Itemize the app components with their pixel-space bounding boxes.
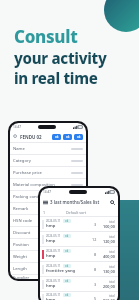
staticText: total xyxy=(109,235,115,239)
staticText: hmp xyxy=(46,253,56,259)
staticText: 14:47 xyxy=(43,190,52,194)
button[interactable]: Search xyxy=(10,131,86,142)
button[interactable]: 2024-05-11 xyxy=(40,292,118,300)
button[interactable]: HSN code xyxy=(10,215,86,227)
staticText: Material composition xyxy=(13,182,55,188)
staticText: ok xyxy=(65,234,69,238)
staticText: hmp xyxy=(46,283,56,289)
staticText: Default sort xyxy=(66,210,86,215)
staticText: ok xyxy=(66,135,70,139)
button[interactable]: 1 xyxy=(40,208,118,216)
staticText: total xyxy=(109,220,115,224)
button[interactable]: Menu xyxy=(40,196,118,208)
staticText: hmp xyxy=(46,238,56,244)
staticText: 14:47 xyxy=(13,125,22,129)
button[interactable]: Name xyxy=(10,143,86,155)
staticText: 1 xyxy=(43,210,46,215)
staticText: Weight xyxy=(13,254,27,260)
staticText: ok xyxy=(65,264,69,268)
staticText: total xyxy=(109,265,115,269)
staticText: Discount xyxy=(13,230,31,236)
staticText: Length xyxy=(13,266,27,272)
button[interactable]: ok xyxy=(52,134,61,140)
staticText: frontière yang xyxy=(46,268,76,274)
staticText: 2024-05-11 xyxy=(46,234,61,238)
staticText: ok xyxy=(65,293,69,297)
button[interactable]: Weight xyxy=(10,251,86,263)
staticText: Consult xyxy=(14,25,78,48)
staticText: 5 xyxy=(94,296,97,300)
staticText: 8 xyxy=(94,267,97,272)
other: Menu xyxy=(43,200,48,205)
staticText: 3 xyxy=(94,282,97,287)
staticText: total xyxy=(109,280,115,284)
staticText: hmp xyxy=(46,223,56,229)
staticText: ok xyxy=(55,135,59,139)
staticText: 3 xyxy=(94,222,97,227)
staticText: 2024-05-11 xyxy=(46,249,61,253)
staticText: 2024-05-11 xyxy=(46,264,61,268)
staticText: ok xyxy=(77,135,81,139)
button[interactable]: Material composition xyxy=(10,179,86,191)
staticText: Supplier xyxy=(13,275,30,279)
button[interactable]: 2024-05-11 xyxy=(40,277,118,292)
staticText: total xyxy=(109,250,115,254)
staticText: 100,00 xyxy=(103,224,115,229)
staticText: ok xyxy=(65,249,69,253)
button[interactable]: 2024-05-11 xyxy=(40,262,118,277)
staticText: your activity xyxy=(14,48,107,68)
staticText: Position xyxy=(13,242,29,248)
staticText: 130,00 xyxy=(103,269,115,274)
staticText: 2024-05-11 xyxy=(46,293,61,297)
staticText: Packing content xyxy=(13,194,45,200)
button[interactable]: Remark xyxy=(10,203,86,215)
staticText: in real time xyxy=(14,68,98,88)
button[interactable]: ok xyxy=(63,134,72,140)
button[interactable]: Discount xyxy=(10,227,86,239)
staticText: 8 xyxy=(94,252,97,257)
staticText: total xyxy=(109,294,115,298)
staticText: 12 xyxy=(92,237,97,242)
staticText: HSN code xyxy=(13,218,33,224)
button[interactable]: ok xyxy=(74,134,83,140)
button[interactable]: 2024-05-11 xyxy=(40,217,118,232)
button[interactable]: Supplier xyxy=(10,275,86,279)
staticText: ok xyxy=(65,279,69,283)
staticText: hmp xyxy=(46,297,56,300)
staticText: 2024-05-11 xyxy=(46,279,61,283)
button[interactable]: Category xyxy=(10,155,86,167)
other: Search xyxy=(110,200,115,205)
staticText: 400,00 xyxy=(103,254,115,259)
other: Search xyxy=(13,134,18,139)
staticText: 860,00 xyxy=(103,298,115,300)
staticText: ok xyxy=(65,219,69,223)
button[interactable]: Length xyxy=(10,263,86,275)
staticText: Category xyxy=(13,158,31,164)
button[interactable]: 2024-05-11 xyxy=(40,247,118,262)
staticText: Name xyxy=(13,146,25,152)
staticText: 120,00 xyxy=(103,239,115,244)
button[interactable]: Purchase price xyxy=(10,167,86,179)
button[interactable]: Packing content xyxy=(10,191,86,203)
staticText: 3 last months/Sales list xyxy=(50,199,100,205)
staticText: FENDU 02 xyxy=(20,134,42,140)
staticText: 200,00 xyxy=(103,284,115,289)
staticText: Purchase price xyxy=(13,170,42,176)
button[interactable]: 2024-05-11 xyxy=(40,232,118,247)
staticText: Remark xyxy=(13,206,29,212)
staticText: 2024-05-11 xyxy=(46,219,61,223)
button[interactable]: Position xyxy=(10,239,86,251)
